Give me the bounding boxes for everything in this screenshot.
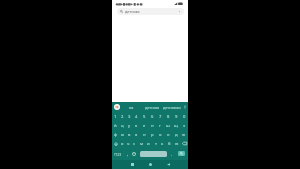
button[interactable]: л	[164, 130, 172, 139]
button[interactable]: г	[156, 121, 164, 130]
button[interactable]: Shift	[112, 139, 119, 148]
button[interactable]: 5	[140, 112, 148, 121]
staticText: детская	[125, 9, 140, 14]
staticText: б	[168, 141, 171, 147]
button[interactable]: 3	[126, 112, 133, 121]
staticText: 4	[135, 114, 138, 120]
button[interactable]: у	[126, 121, 133, 130]
button[interactable]: ы	[119, 130, 126, 139]
button[interactable]: Recents	[123, 160, 141, 169]
staticText: у	[128, 123, 131, 129]
button[interactable]: з	[180, 121, 188, 130]
button[interactable]: на	[120, 102, 142, 112]
button[interactable]: ?123	[112, 148, 124, 160]
staticText: ш	[166, 123, 170, 129]
button[interactable]: к	[133, 121, 140, 130]
staticText: ф	[114, 132, 118, 138]
button[interactable]: 7	[156, 112, 164, 121]
staticText: о	[159, 132, 162, 138]
button[interactable]: б	[166, 139, 173, 148]
button[interactable]: 1	[112, 112, 119, 121]
staticText: в	[128, 132, 131, 138]
staticText: я	[121, 141, 124, 147]
button[interactable]: с	[131, 139, 138, 148]
staticText: ч	[127, 141, 130, 147]
button[interactable]: я	[119, 139, 125, 148]
button[interactable]: ю	[173, 139, 180, 148]
button[interactable]: Home	[141, 160, 159, 169]
staticText: 1	[114, 114, 117, 120]
staticText: 6	[151, 114, 154, 120]
button[interactable]: о	[156, 130, 164, 139]
button[interactable]: м	[138, 139, 145, 148]
staticText: 7	[159, 114, 162, 120]
button[interactable]: ж	[180, 130, 188, 139]
staticText: н	[151, 123, 154, 129]
button[interactable]: детская	[117, 8, 184, 15]
staticText: .	[171, 151, 173, 157]
button[interactable]: Search	[178, 151, 185, 156]
staticText: с	[133, 141, 136, 147]
staticText: 8	[167, 114, 170, 120]
button[interactable]: ,	[124, 148, 132, 160]
staticText: 2	[121, 114, 124, 120]
button[interactable]: 0	[180, 112, 188, 121]
button[interactable]: ш	[164, 121, 172, 130]
staticText: ?123	[114, 152, 122, 156]
staticText: л	[167, 132, 170, 138]
staticText: т	[155, 141, 157, 147]
staticText: ц	[121, 123, 124, 129]
staticText: р	[151, 132, 154, 138]
staticText: г	[159, 123, 161, 129]
staticText: к	[135, 123, 138, 129]
button[interactable]: 8	[164, 112, 172, 121]
staticText: ж	[182, 132, 186, 138]
staticText: й	[114, 123, 117, 129]
button[interactable]: ц	[119, 121, 126, 130]
staticText: 5	[143, 114, 146, 120]
button[interactable]: щ	[172, 121, 180, 130]
button[interactable]: Backspace	[180, 139, 188, 148]
button[interactable]: 4	[133, 112, 140, 121]
staticText: 3	[128, 114, 131, 120]
button[interactable]: п	[140, 130, 148, 139]
button[interactable]: детскими	[162, 102, 182, 112]
button[interactable]: ф	[112, 130, 119, 139]
button[interactable]: Emoji	[131, 148, 137, 160]
staticText: на	[129, 105, 134, 110]
staticText: а	[135, 132, 138, 138]
staticText: 9	[175, 114, 178, 120]
button[interactable]: детская	[142, 102, 162, 112]
button[interactable]: а	[133, 130, 140, 139]
button[interactable]: .	[168, 148, 176, 160]
button[interactable]: Google	[114, 104, 120, 110]
button[interactable]: р	[148, 130, 156, 139]
staticText: м	[140, 141, 144, 147]
button[interactable]: Space	[140, 151, 167, 157]
staticText: д	[175, 132, 178, 138]
button[interactable]: й	[112, 121, 119, 130]
button[interactable]: т	[152, 139, 159, 148]
staticText: и	[147, 141, 150, 147]
staticText: ь	[161, 141, 164, 147]
button[interactable]: 9	[172, 112, 180, 121]
staticText: детскими	[163, 105, 181, 110]
button[interactable]: в	[126, 130, 133, 139]
button[interactable]: 2	[119, 112, 126, 121]
staticText: е	[143, 123, 146, 129]
staticText: ю	[175, 141, 179, 147]
button[interactable]: 6	[148, 112, 156, 121]
button[interactable]: д	[172, 130, 180, 139]
staticText: з	[183, 123, 186, 129]
button[interactable]: Back	[159, 160, 177, 169]
button[interactable]: ь	[159, 139, 166, 148]
button[interactable]: е	[140, 121, 148, 130]
staticText: щ	[174, 123, 178, 129]
staticText: ,	[127, 151, 129, 157]
button[interactable]: н	[148, 121, 156, 130]
staticText: 0	[183, 114, 186, 120]
button[interactable]: Voice input	[182, 102, 188, 112]
staticText: детская	[145, 105, 160, 110]
button[interactable]: и	[145, 139, 152, 148]
button[interactable]: ч	[125, 139, 131, 148]
